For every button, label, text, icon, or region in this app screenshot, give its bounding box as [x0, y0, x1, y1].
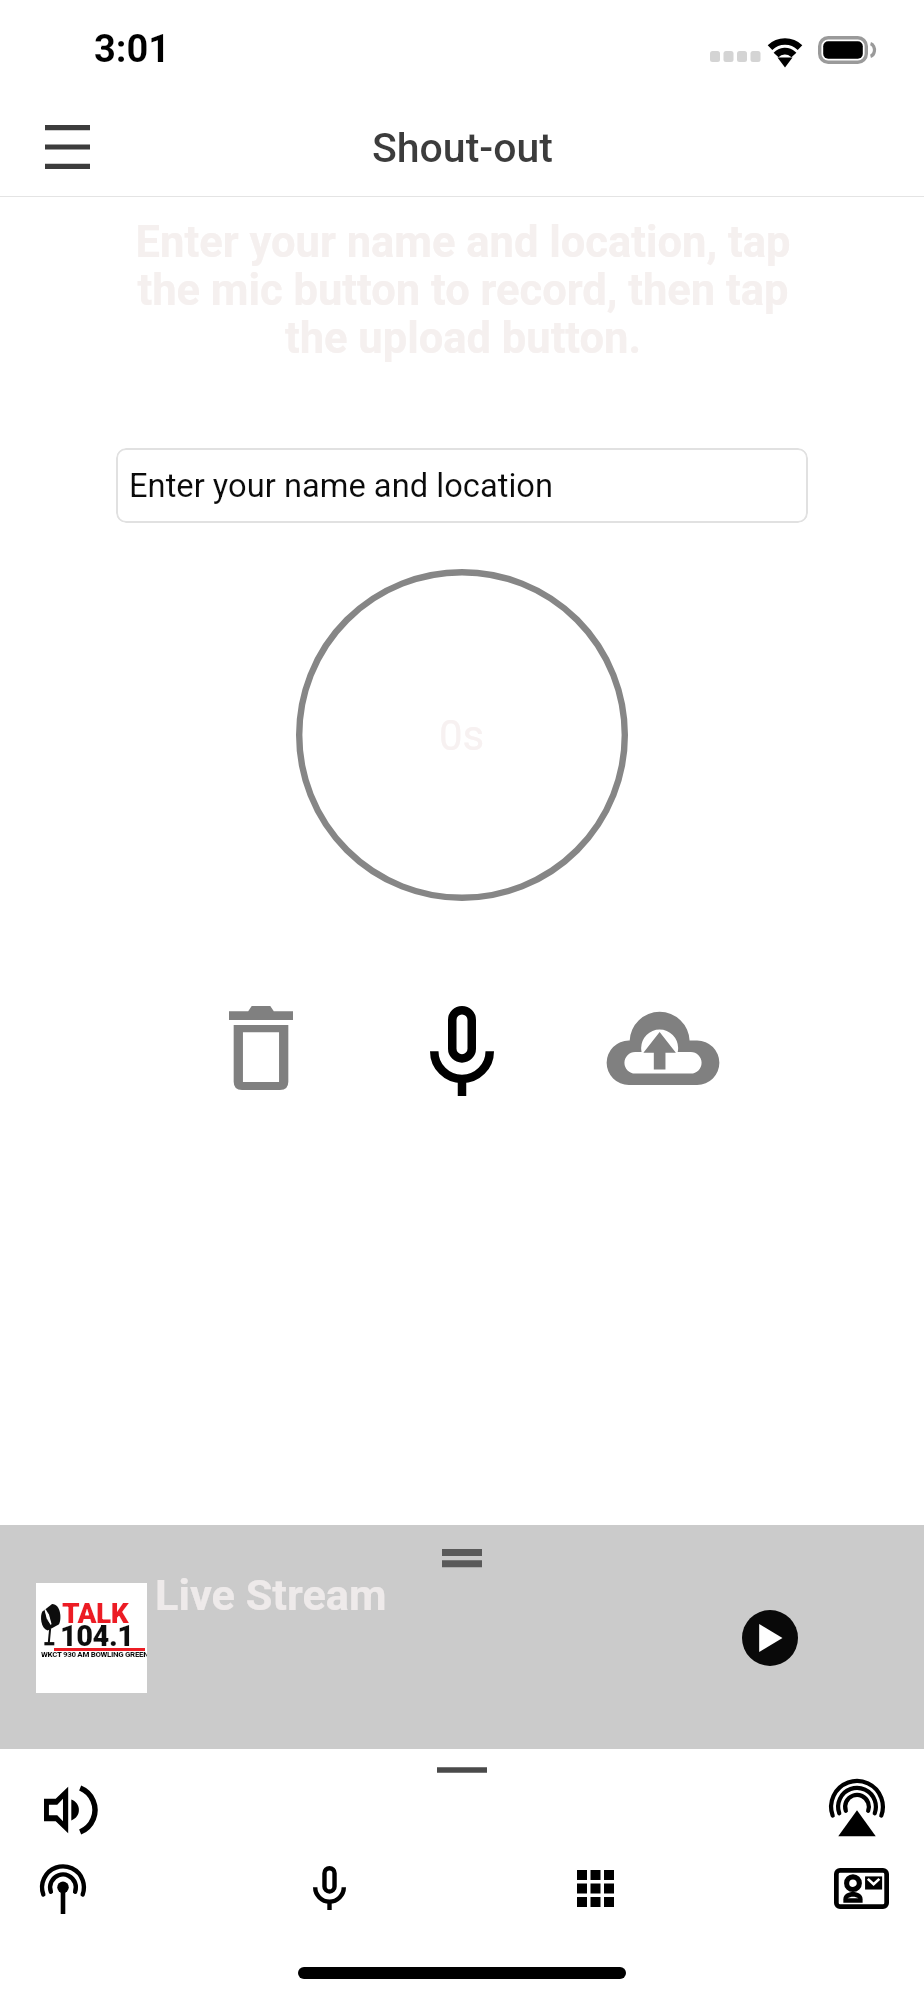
button[interactable]: Volume	[20, 1760, 120, 1860]
staticText: Shout-out	[372, 124, 553, 172]
button[interactable]: Recording timer	[296, 569, 628, 901]
button[interactable]: Menu	[22, 102, 112, 192]
button[interactable]: Record	[402, 991, 522, 1111]
staticText: 0s	[439, 711, 485, 760]
button[interactable]: Live radio	[13, 1841, 113, 1941]
button[interactable]: AirPlay	[807, 1760, 907, 1860]
button[interactable]: Play	[742, 1610, 798, 1666]
button[interactable]: More	[545, 1838, 645, 1938]
staticText: TALK	[62, 1597, 129, 1630]
staticText: Enter your name and location, tap the mi…	[132, 217, 794, 363]
button[interactable]: Upload recording	[603, 988, 723, 1108]
staticText: 104.1	[60, 1619, 134, 1653]
staticText: Enter your name and location	[129, 467, 554, 505]
button[interactable]: Enter your name and location	[116, 448, 808, 523]
staticText: Live Stream	[155, 1570, 387, 1621]
staticText: WKCT 930 AM BOWLING GREEN	[41, 1650, 147, 1659]
button[interactable]: Shout-out	[279, 1838, 379, 1938]
button[interactable]: Contact	[811, 1838, 911, 1938]
staticText: 3:01	[94, 27, 171, 72]
button[interactable]: Delete recording	[201, 988, 321, 1108]
